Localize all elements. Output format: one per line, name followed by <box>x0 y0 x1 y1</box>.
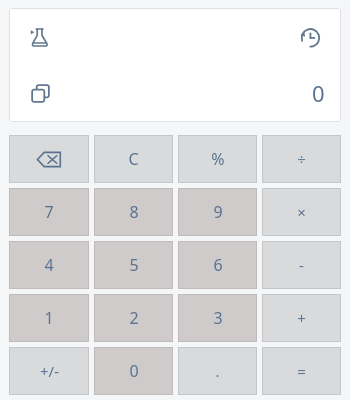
staticText: × <box>297 202 306 222</box>
button[interactable]: = <box>262 347 341 395</box>
staticText: +/- <box>40 361 59 381</box>
staticText: 4 <box>44 254 54 276</box>
button[interactable]: 7 <box>9 188 89 236</box>
button[interactable]: 6 <box>178 241 257 289</box>
button[interactable]: C <box>94 135 173 183</box>
button[interactable]: % <box>178 135 257 183</box>
button[interactable]: ÷ <box>262 135 341 183</box>
button[interactable]: Scientific mode <box>25 22 55 52</box>
staticText: 9 <box>213 201 223 223</box>
staticText: ÷ <box>297 149 306 169</box>
button[interactable]: + <box>262 294 341 342</box>
button[interactable]: 2 <box>94 294 173 342</box>
staticText: 6 <box>213 254 223 276</box>
button[interactable]: Copy result <box>25 78 55 108</box>
button[interactable]: 3 <box>178 294 257 342</box>
staticText: 7 <box>44 201 54 223</box>
staticText: C <box>128 148 139 170</box>
button[interactable]: 9 <box>178 188 257 236</box>
staticText: - <box>299 255 304 275</box>
staticText: 8 <box>129 201 139 223</box>
staticText: + <box>297 308 306 328</box>
button[interactable]: 5 <box>94 241 173 289</box>
button[interactable]: 0 <box>94 347 173 395</box>
staticText: 5 <box>129 254 139 276</box>
staticText: . <box>215 361 220 381</box>
staticText: 2 <box>129 307 139 329</box>
staticText: = <box>297 361 306 381</box>
button[interactable]: 1 <box>9 294 89 342</box>
button[interactable]: - <box>262 241 341 289</box>
staticText: % <box>211 148 225 170</box>
button[interactable]: Backspace <box>9 135 89 183</box>
button[interactable]: History <box>295 22 325 52</box>
staticText: 3 <box>213 307 223 329</box>
button[interactable]: 4 <box>9 241 89 289</box>
button[interactable]: +/- <box>9 347 89 395</box>
staticText: 0 <box>312 78 325 108</box>
staticText: 1 <box>44 307 54 329</box>
staticText: 0 <box>129 360 139 382</box>
button[interactable]: 8 <box>94 188 173 236</box>
button[interactable]: . <box>178 347 257 395</box>
button[interactable]: × <box>262 188 341 236</box>
